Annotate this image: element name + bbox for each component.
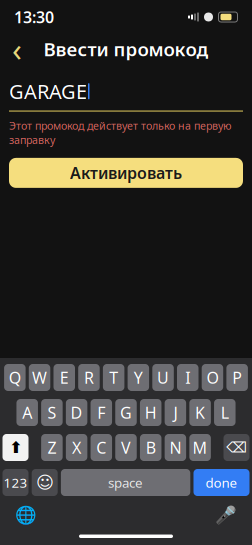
staticText: Y bbox=[134, 367, 143, 388]
button[interactable]: V bbox=[115, 434, 137, 461]
button[interactable]: Q bbox=[4, 364, 26, 391]
staticText: done bbox=[205, 474, 237, 491]
staticText: V bbox=[121, 437, 131, 458]
button[interactable]: T bbox=[103, 364, 124, 391]
button[interactable]: 123 bbox=[2, 469, 28, 496]
button[interactable]: Dictation bbox=[212, 502, 240, 528]
staticText: A bbox=[22, 402, 32, 423]
button[interactable]: W bbox=[29, 364, 50, 391]
staticText: T bbox=[109, 367, 118, 388]
staticText: Активировать bbox=[70, 162, 182, 183]
button[interactable]: A bbox=[16, 399, 38, 426]
staticText: ☺ bbox=[36, 473, 54, 492]
staticText: J bbox=[173, 402, 177, 423]
staticText: R bbox=[84, 367, 94, 388]
staticText: C bbox=[96, 437, 106, 458]
button[interactable]: F bbox=[90, 399, 112, 426]
staticText: M bbox=[193, 437, 208, 458]
button[interactable]: H bbox=[140, 399, 161, 426]
button[interactable]: D bbox=[66, 399, 87, 426]
button[interactable]: B bbox=[140, 434, 161, 461]
staticText: GARAGE bbox=[9, 78, 87, 105]
staticText: P bbox=[232, 367, 242, 388]
button[interactable]: done bbox=[193, 469, 249, 496]
staticText: Ввести промокод bbox=[43, 37, 208, 61]
staticText: D bbox=[71, 402, 83, 423]
staticText: 123 bbox=[3, 474, 27, 491]
button[interactable]: M bbox=[189, 434, 211, 461]
button[interactable]: S bbox=[41, 399, 63, 426]
staticText: G bbox=[120, 402, 132, 423]
button[interactable]: U bbox=[152, 364, 174, 391]
staticText: 🌐 bbox=[15, 505, 37, 525]
staticText: L bbox=[221, 402, 229, 423]
staticText: Q bbox=[9, 367, 21, 388]
button[interactable]: N bbox=[165, 434, 186, 461]
button[interactable]: R bbox=[78, 364, 100, 391]
staticText: K bbox=[195, 402, 205, 423]
staticText: F bbox=[97, 402, 105, 423]
staticText: ⬆ bbox=[9, 438, 22, 457]
button[interactable]: Y bbox=[128, 364, 149, 391]
staticText: O bbox=[206, 367, 218, 388]
staticText: X bbox=[72, 437, 81, 458]
button[interactable]: J bbox=[165, 399, 186, 426]
staticText: U bbox=[157, 367, 169, 388]
staticText: W bbox=[32, 367, 47, 388]
staticText: space bbox=[108, 474, 143, 491]
button[interactable]: L bbox=[214, 399, 235, 426]
button[interactable]: Emoji bbox=[32, 469, 58, 496]
button[interactable]: Z bbox=[41, 434, 63, 461]
button[interactable]: space bbox=[61, 469, 190, 496]
staticText: Z bbox=[47, 437, 56, 458]
button[interactable]: Change keyboard bbox=[12, 502, 40, 528]
button[interactable]: Back bbox=[0, 32, 34, 66]
button[interactable]: I bbox=[177, 364, 198, 391]
staticText: Этот промокод действует только на первую… bbox=[9, 119, 232, 147]
button[interactable]: O bbox=[202, 364, 223, 391]
staticText: 13:30 bbox=[14, 6, 54, 28]
staticText: H bbox=[145, 402, 157, 423]
button[interactable]: Shift bbox=[2, 434, 28, 461]
button[interactable]: C bbox=[90, 434, 112, 461]
staticText: ‹ bbox=[12, 28, 22, 70]
staticText: B bbox=[146, 437, 156, 458]
button[interactable]: Активировать bbox=[9, 158, 243, 188]
button[interactable]: X bbox=[66, 434, 87, 461]
staticText: I bbox=[185, 367, 190, 388]
staticText: N bbox=[169, 437, 181, 458]
button[interactable]: E bbox=[53, 364, 75, 391]
staticText: E bbox=[60, 367, 69, 388]
staticText: 🎤 bbox=[215, 505, 237, 525]
button[interactable]: P bbox=[226, 364, 248, 391]
button[interactable]: Delete bbox=[223, 434, 249, 461]
staticText: ⌫ bbox=[226, 439, 247, 456]
button[interactable]: K bbox=[189, 399, 211, 426]
button[interactable]: G bbox=[115, 399, 137, 426]
staticText: S bbox=[47, 402, 56, 423]
